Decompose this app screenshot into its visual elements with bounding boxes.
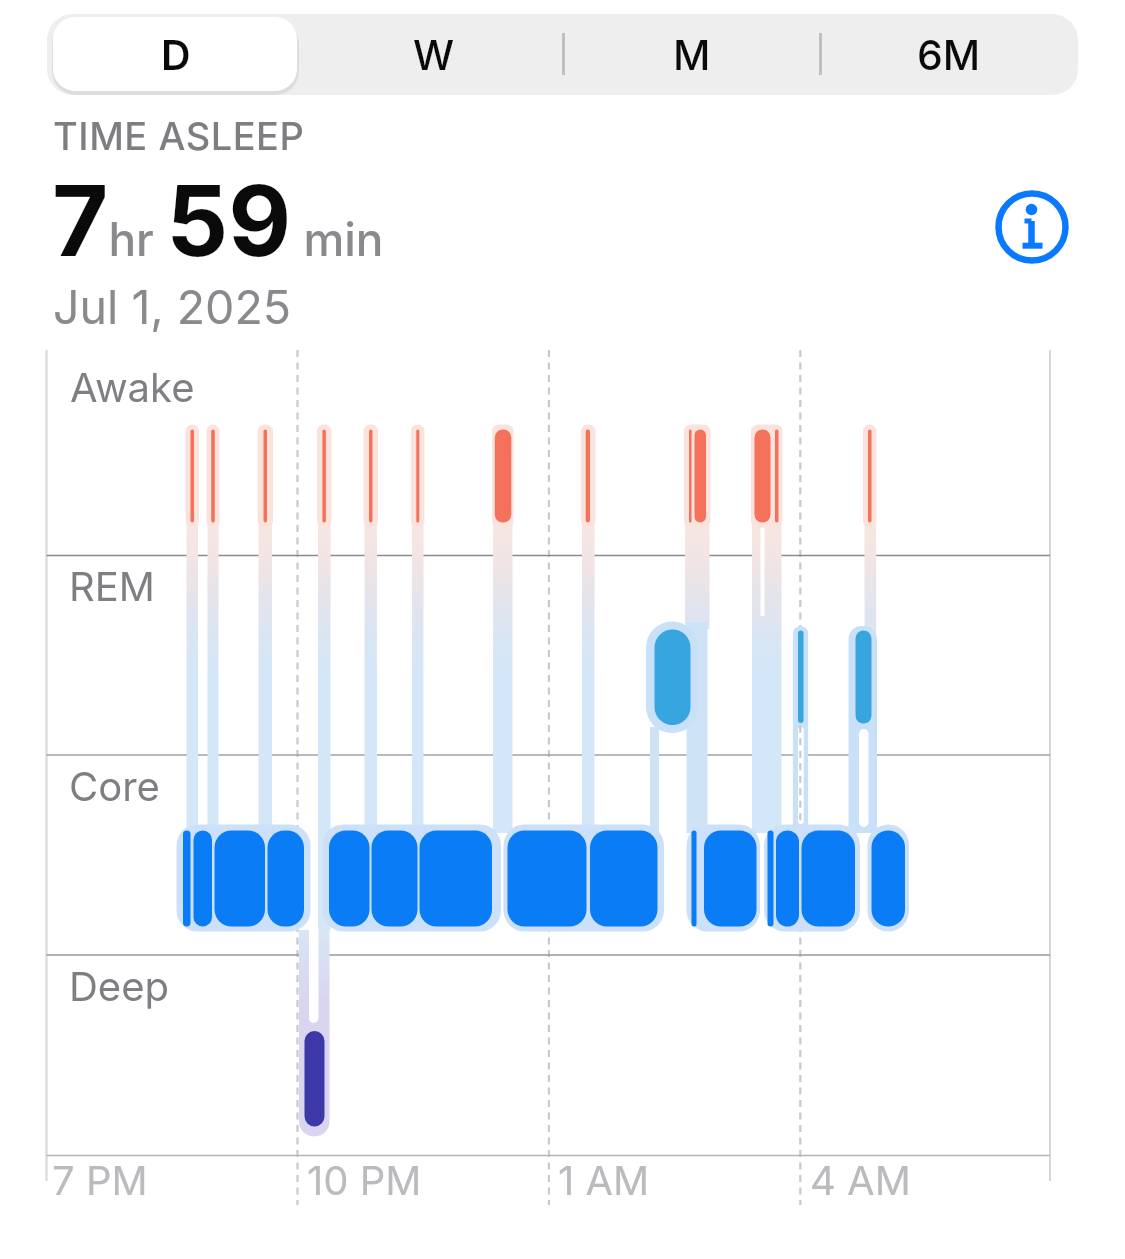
staticText: Jul 1, 2025 [53,279,292,335]
button[interactable]: 6M [820,14,1078,95]
staticText: Deep [69,962,169,1010]
button[interactable] [995,189,1071,265]
staticText: 4 AM [810,1156,911,1204]
staticText: 6M [917,30,981,80]
button[interactable]: D [47,14,305,95]
staticText: Core [69,762,160,810]
staticText: TIME ASLEEP [53,113,305,159]
button[interactable]: M [563,14,821,95]
staticText: 10 PM [307,1156,422,1204]
staticText: M [673,30,711,80]
button[interactable]: W [305,14,563,95]
staticText: REM [69,562,155,610]
staticText: Awake [70,363,195,411]
staticText: D [161,30,191,80]
staticText: 7hr 59 min [52,162,384,279]
staticText: W [413,30,455,80]
staticText: 7 PM [52,1156,148,1204]
staticText: 1 AM [558,1156,650,1204]
